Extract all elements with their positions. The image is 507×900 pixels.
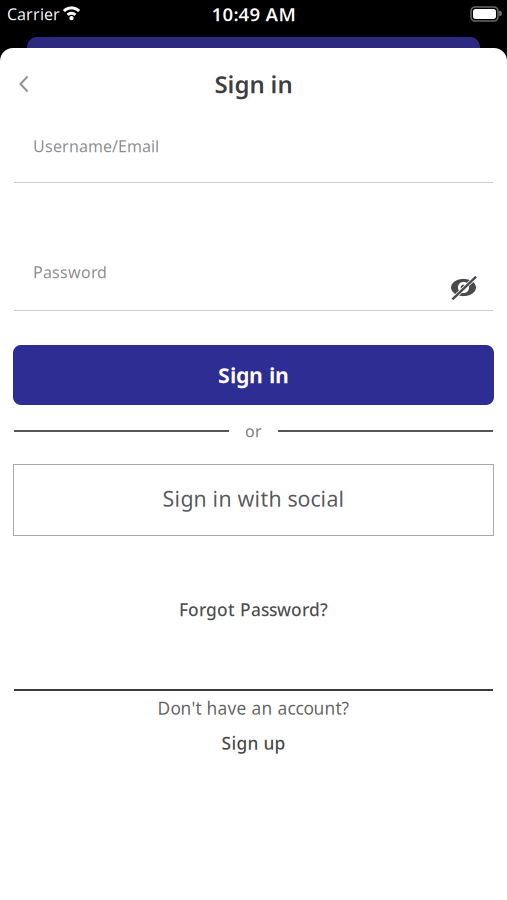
button[interactable]: Forgot Password? (179, 600, 328, 622)
button[interactable]: Sign up (221, 732, 285, 754)
staticText: Don't have an account? (157, 696, 349, 719)
staticText: Carrier (7, 3, 60, 25)
button[interactable]: Back (0, 48, 42, 120)
staticText: Sign up (221, 731, 285, 754)
staticText: Sign in with social (162, 484, 344, 513)
staticText: Sign in (218, 361, 289, 389)
staticText: Password (33, 261, 107, 283)
button[interactable]: Sign in with social (0, 464, 507, 536)
staticText: Username/Email (33, 135, 159, 157)
staticText: 10:49 AM (211, 2, 295, 26)
staticText: Sign in (214, 68, 292, 100)
button[interactable]: Sign in (0, 345, 507, 405)
button[interactable]: Show password (448, 258, 507, 285)
staticText: Forgot Password? (179, 598, 328, 621)
staticText: or (245, 420, 262, 442)
